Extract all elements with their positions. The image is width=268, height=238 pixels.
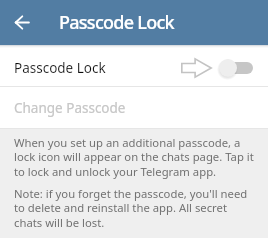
staticText: Passcode Lock [59, 10, 174, 35]
button[interactable]: Back [0, 0, 45, 45]
staticText: Change Passcode [14, 99, 126, 117]
staticText: When you set up an additional passcode, … [14, 135, 254, 180]
staticText: Note: if you forget the passcode, you'll… [14, 186, 254, 231]
button[interactable]: Toggle passcode lock [217, 57, 253, 78]
button[interactable]: Passcode Lock [0, 45, 268, 87]
staticText: Passcode Lock [14, 59, 106, 77]
button[interactable]: Change Passcode [0, 87, 268, 129]
